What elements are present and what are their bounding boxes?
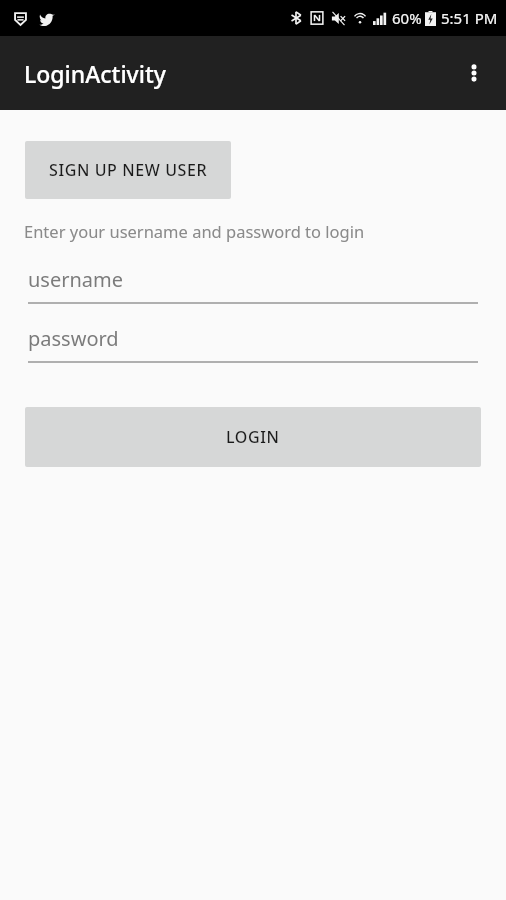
staticText: Enter your username and password to logi… bbox=[24, 220, 365, 242]
staticText: username bbox=[28, 266, 124, 293]
button[interactable]: LOGIN bbox=[25, 407, 481, 467]
staticText: 5:51 PM bbox=[441, 8, 498, 28]
button[interactable]: password bbox=[28, 325, 478, 363]
staticText: SIGN UP NEW USER bbox=[49, 159, 208, 181]
button[interactable]: username bbox=[28, 266, 478, 304]
staticText: password bbox=[28, 325, 119, 352]
button[interactable]: SIGN UP NEW USER bbox=[25, 141, 231, 199]
staticText: 60% bbox=[392, 8, 422, 28]
button[interactable]: More options bbox=[450, 49, 498, 97]
staticText: LOGIN bbox=[226, 426, 280, 448]
staticText: LoginActivity bbox=[24, 58, 166, 89]
